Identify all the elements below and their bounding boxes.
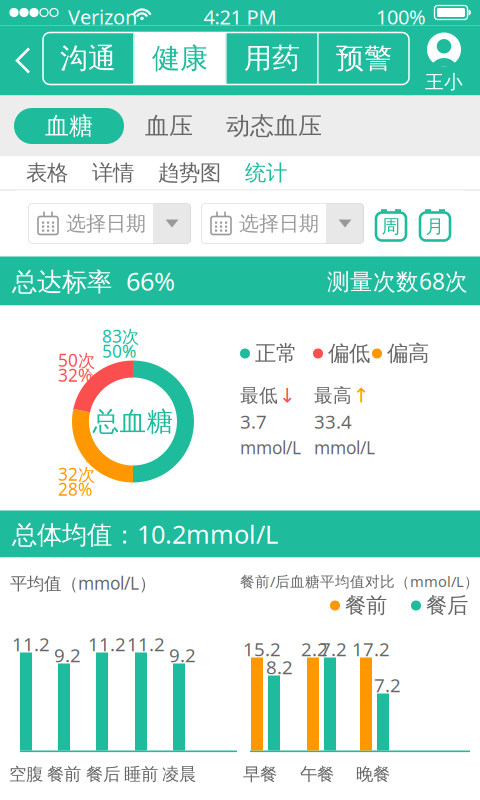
button[interactable]: 选择日期 [28, 203, 191, 243]
button[interactable]: Back [6, 40, 40, 80]
button[interactable]: 健康 [135, 32, 225, 84]
staticText: 3.7 [240, 409, 267, 434]
staticText: 偏高 [387, 340, 429, 367]
staticText: 11.2 [127, 631, 165, 656]
staticText: 17.2 [352, 636, 390, 661]
staticText: 偏低 [328, 340, 370, 367]
staticText: 周 [381, 215, 400, 238]
staticText: 空腹 [9, 763, 43, 785]
button[interactable]: 月 [418, 204, 452, 242]
staticText: 平均值（mmol/L） [10, 571, 156, 594]
staticText: 7.2 [374, 672, 401, 697]
staticText: 33.4 [314, 409, 352, 434]
staticText: 凌晨 [162, 763, 196, 785]
staticText: 11.2 [12, 631, 50, 656]
staticText: 8.2 [266, 654, 293, 679]
staticText: 血压 [145, 111, 193, 141]
button[interactable]: 预警 [319, 32, 409, 84]
staticText: 15.2 [243, 636, 281, 661]
staticText: 王小一 [425, 70, 463, 116]
staticText: 餐前 [47, 763, 81, 785]
staticText: 32% [58, 363, 92, 386]
staticText: 用药 [244, 41, 300, 76]
button[interactable]: 王小一 [416, 29, 472, 93]
staticText: 详情 [92, 160, 134, 186]
staticText: 早餐 [243, 763, 277, 785]
staticText: 餐后 [86, 763, 120, 785]
staticText: 晚餐 [356, 763, 390, 785]
staticText: 正常 [255, 340, 297, 367]
staticText: 血糖 [45, 111, 93, 141]
staticText: 7.2 [320, 636, 347, 661]
staticText: mmol/L [314, 436, 375, 459]
staticText: 最低 [240, 384, 278, 407]
button[interactable]: 统计 [233, 156, 299, 189]
staticText: 2.2 [301, 636, 328, 661]
staticText: 趋势图 [158, 160, 221, 186]
button[interactable]: 血压 [124, 108, 214, 144]
staticText: 睡前 [124, 763, 158, 785]
staticText: 32次 [58, 462, 95, 485]
staticText: 选择日期 [239, 211, 319, 236]
staticText: 9.2 [169, 642, 196, 667]
button[interactable]: 周 [374, 204, 408, 242]
staticText: 月 [425, 215, 444, 238]
staticText: 4:21 PM [203, 3, 276, 30]
staticText: 午餐 [300, 763, 334, 785]
staticText: ↓ [279, 384, 296, 407]
staticText: 表格 [26, 160, 68, 186]
button[interactable]: 沟通 [43, 32, 133, 84]
staticText: 餐前/后血糖平均值对比（mmol/L） [240, 571, 479, 591]
button[interactable]: 表格 [14, 156, 80, 189]
staticText: 总达标率 66% [12, 264, 175, 298]
staticText: 最高 [314, 384, 352, 407]
staticText: 50次 [58, 348, 95, 371]
button[interactable]: 动态血压 [214, 108, 334, 144]
staticText: 总体均值：10.2mmol/L [12, 517, 278, 551]
staticText: 50% [102, 339, 136, 362]
button[interactable]: 用药 [227, 32, 317, 84]
button[interactable]: 趋势图 [146, 156, 233, 189]
staticText: 餐前 [345, 592, 387, 619]
staticText: 选择日期 [66, 211, 146, 236]
button[interactable]: 选择日期 [201, 203, 364, 243]
staticText: 83次 [102, 324, 139, 347]
staticText: ↑ [353, 384, 370, 407]
staticText: 11.2 [88, 631, 126, 656]
staticText: 统计 [245, 160, 287, 186]
staticText: 测量次数68次 [327, 266, 468, 296]
staticText: 预警 [336, 41, 392, 76]
staticText: 100% [376, 3, 426, 30]
staticText: 沟通 [60, 41, 116, 76]
staticText: mmol/L [240, 436, 301, 459]
staticText: 动态血压 [226, 111, 322, 141]
staticText: 健康 [152, 41, 208, 76]
staticText: 总血糖 [92, 405, 173, 438]
button[interactable]: 详情 [80, 156, 146, 189]
staticText: 餐后 [426, 592, 468, 619]
staticText: 28% [58, 477, 92, 500]
button[interactable]: 血糖 [14, 108, 124, 144]
staticText: 9.2 [54, 642, 81, 667]
staticText: Verizon [68, 3, 137, 30]
